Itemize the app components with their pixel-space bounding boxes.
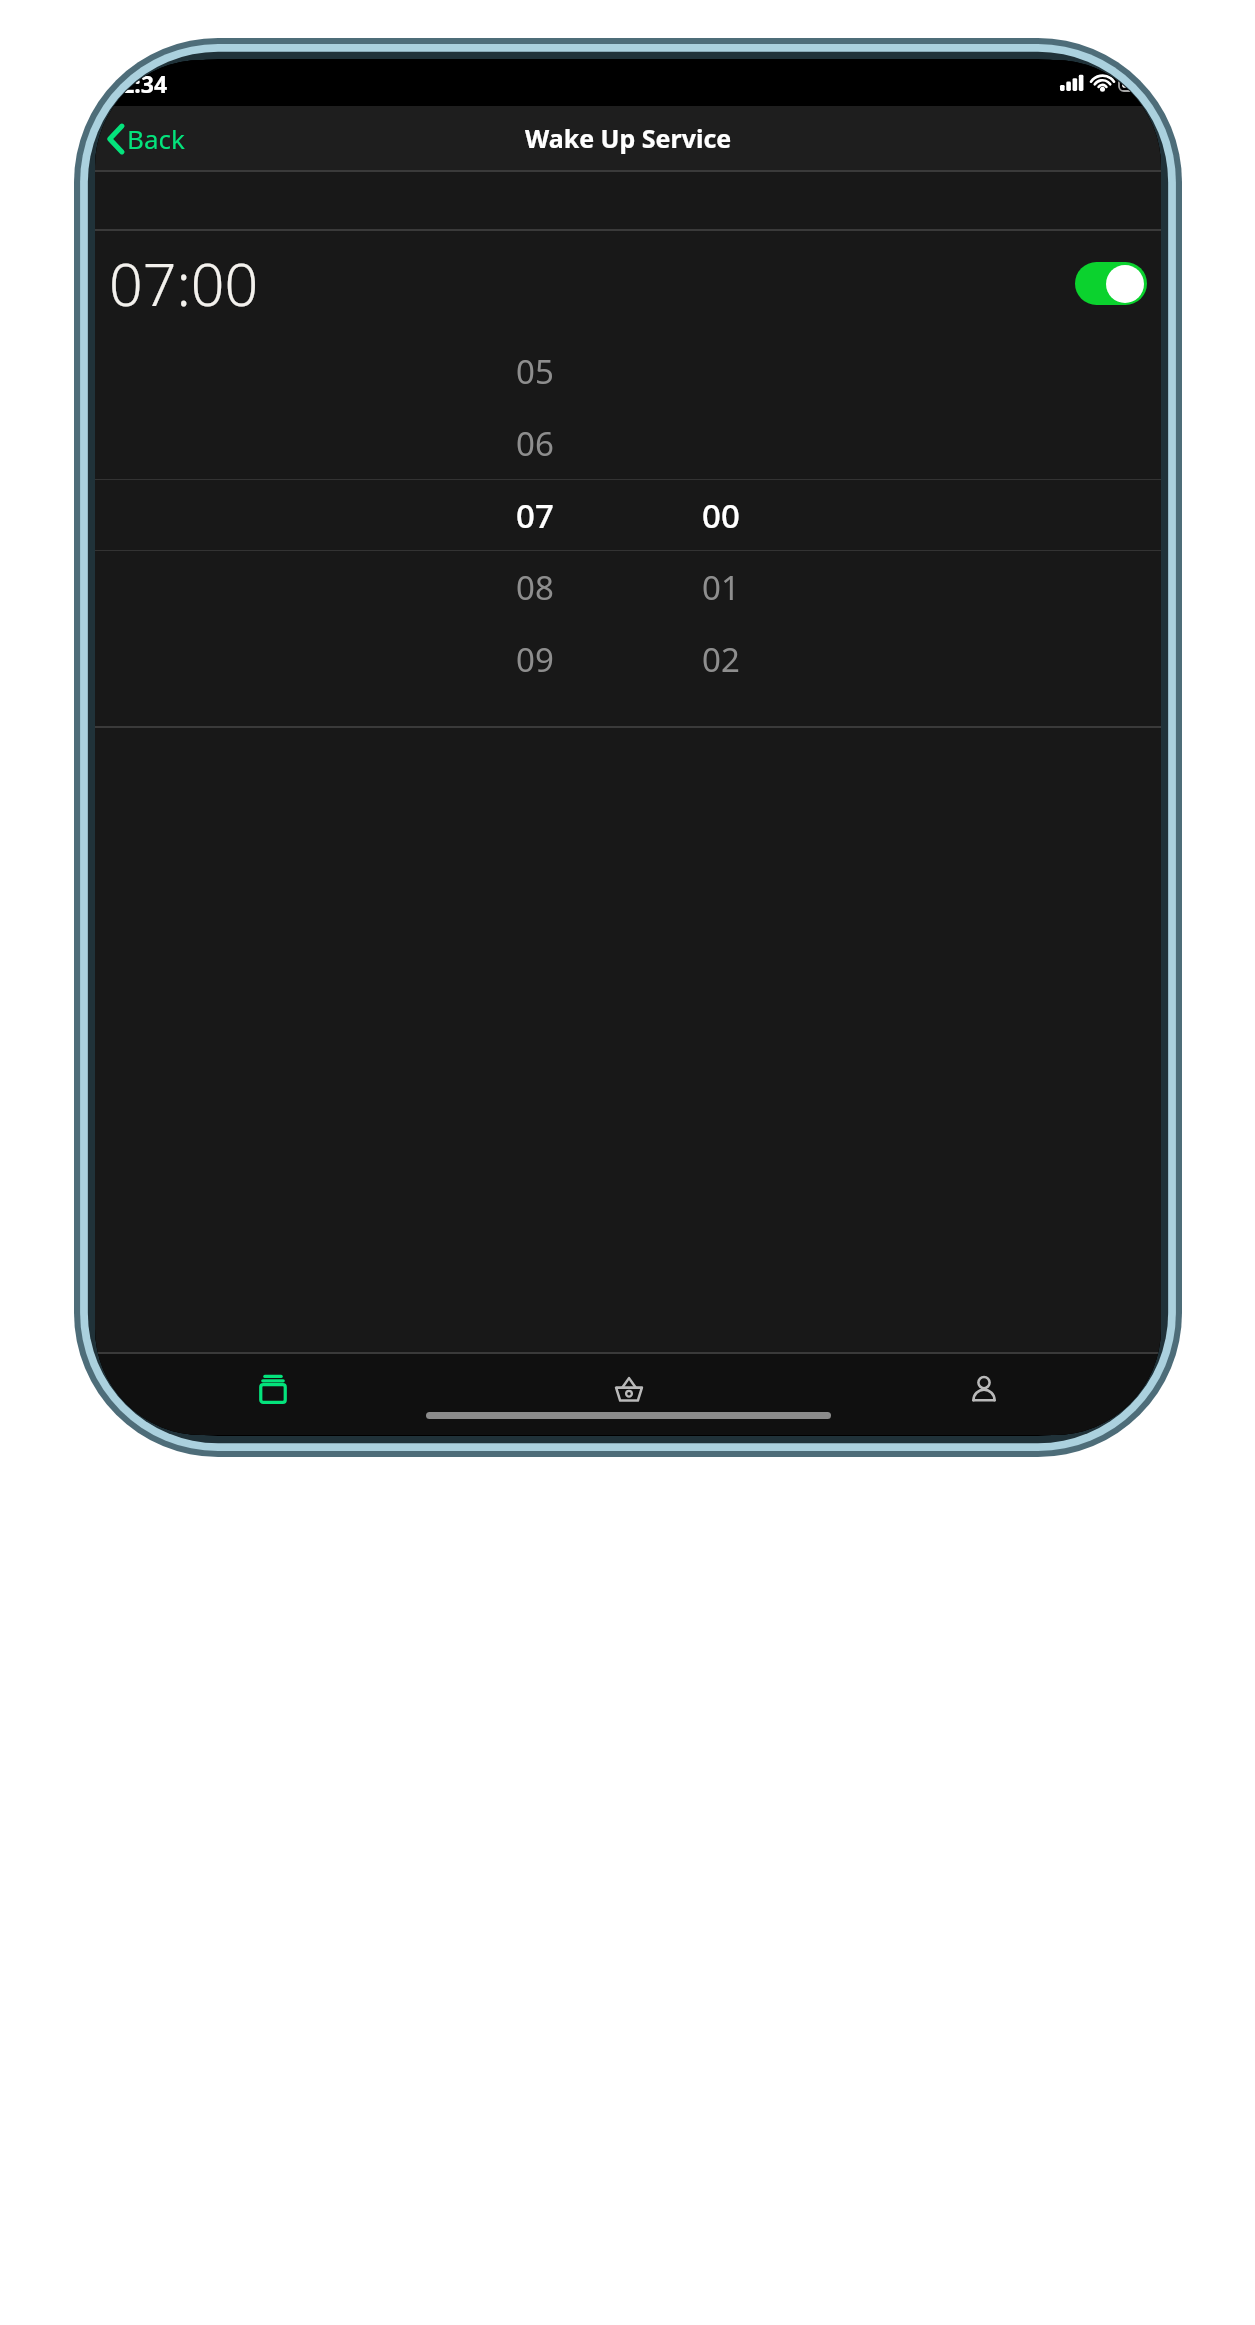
- staticText: Back: [127, 121, 185, 156]
- staticText: 02: [702, 637, 740, 682]
- staticText: 05: [516, 349, 554, 394]
- button[interactable]: Back: [101, 115, 191, 162]
- button[interactable]: 08: [460, 551, 610, 623]
- button[interactable]: 01: [646, 551, 796, 623]
- staticText: 08: [516, 565, 554, 610]
- staticText: 00: [702, 493, 740, 538]
- button[interactable]: Orders: [95, 1360, 451, 1418]
- staticText: 01: [702, 565, 740, 610]
- staticText: 07: [516, 493, 554, 538]
- button[interactable]: Basket: [451, 1360, 806, 1418]
- staticText: 06: [516, 421, 554, 466]
- button[interactable]: 07: [460, 479, 610, 551]
- button[interactable]: 02: [646, 623, 796, 695]
- button[interactable]: 05: [460, 335, 610, 407]
- staticText: Wake Up Service: [525, 121, 732, 155]
- button[interactable]: Profile: [806, 1360, 1161, 1418]
- button[interactable]: 00: [646, 479, 796, 551]
- button[interactable]: 09: [460, 623, 610, 695]
- button[interactable]: 06: [460, 407, 610, 479]
- button[interactable]: Alarm enabled: [1075, 262, 1147, 305]
- staticText: 12:34: [108, 68, 168, 99]
- staticText: 09: [516, 637, 554, 682]
- staticText: 07:00: [109, 243, 259, 323]
